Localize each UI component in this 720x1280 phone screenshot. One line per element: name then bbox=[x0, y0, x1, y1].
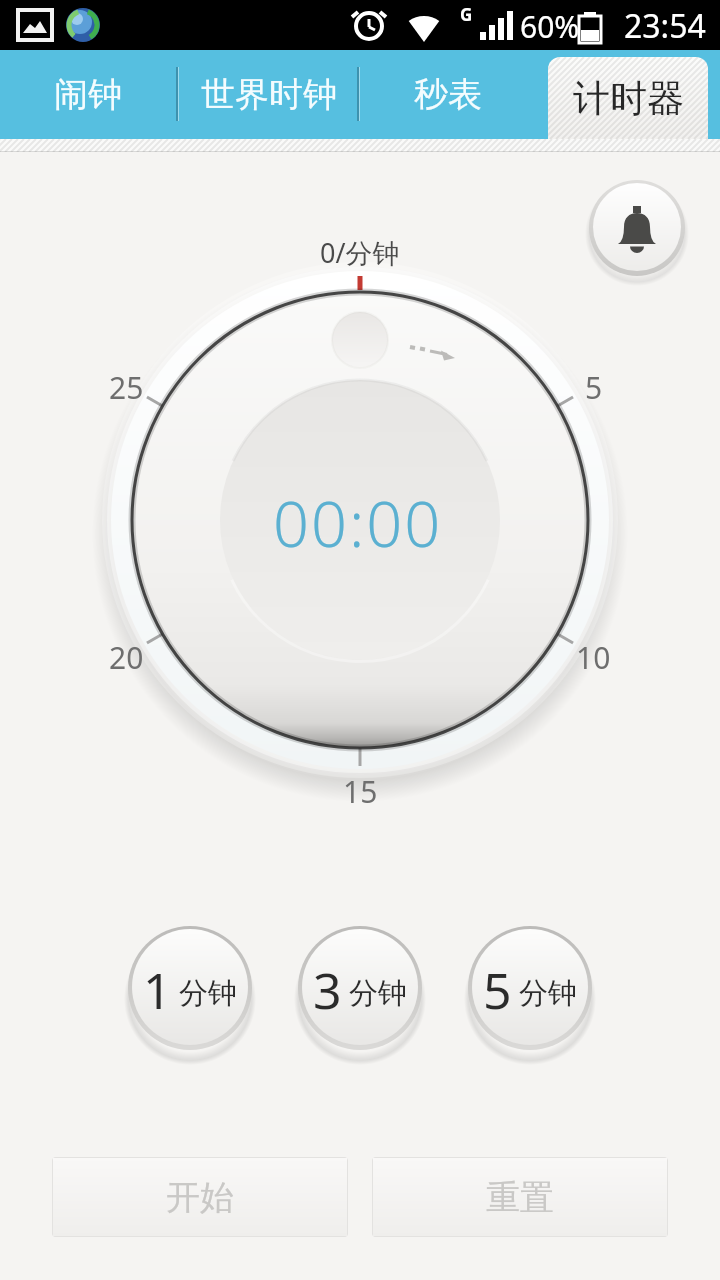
staticText: 10 bbox=[576, 637, 611, 678]
staticText: 60% bbox=[520, 6, 580, 47]
staticText: 闹钟 bbox=[54, 73, 122, 116]
staticText: 秒表 bbox=[414, 73, 482, 116]
button[interactable]: 5 bbox=[466, 926, 594, 1054]
button[interactable]: 计时器 bbox=[548, 57, 708, 139]
staticText: 25 bbox=[109, 367, 144, 408]
staticText: 世界时钟 bbox=[201, 73, 337, 116]
staticText: 分钟 bbox=[519, 975, 577, 1012]
button[interactable]: 重置 bbox=[372, 1157, 668, 1237]
staticText: G bbox=[460, 3, 473, 26]
staticText: 1 bbox=[143, 956, 172, 1024]
button[interactable]: 秒表 bbox=[360, 50, 536, 139]
staticText: 20 bbox=[109, 637, 144, 678]
staticText: 0/分钟 bbox=[320, 234, 400, 271]
staticText: 计时器 bbox=[573, 75, 684, 122]
staticText: 分钟 bbox=[349, 975, 407, 1012]
button[interactable] bbox=[589, 180, 685, 276]
staticText: 开始 bbox=[166, 1176, 234, 1219]
staticText: 重置 bbox=[486, 1176, 554, 1219]
staticText: 分钟 bbox=[179, 975, 237, 1012]
staticText: 3 bbox=[313, 956, 342, 1024]
staticText: 5 bbox=[585, 367, 603, 408]
staticText: 5 bbox=[483, 956, 512, 1024]
button[interactable]: 1 bbox=[126, 926, 254, 1054]
button[interactable]: 开始 bbox=[52, 1157, 348, 1237]
staticText: 23:54 bbox=[624, 4, 706, 48]
button[interactable]: 世界时钟 bbox=[180, 50, 358, 139]
staticText: 00:00 bbox=[273, 480, 443, 560]
button[interactable]: 3 bbox=[296, 926, 424, 1054]
button[interactable]: 闹钟 bbox=[0, 50, 176, 139]
staticText: 15 bbox=[343, 771, 378, 812]
